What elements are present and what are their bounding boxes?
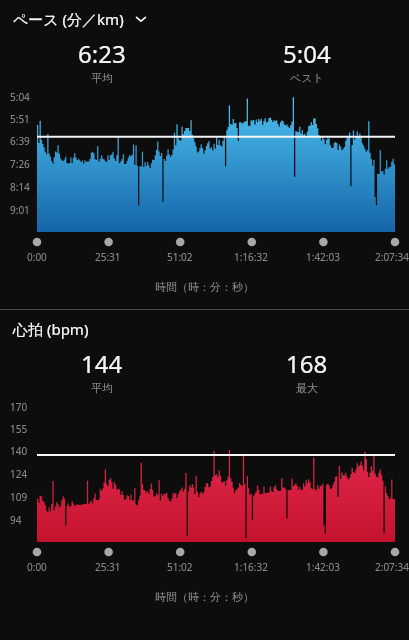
staticText: 8:14 [10,180,30,194]
staticText: 51:02 [167,250,193,264]
staticText: 7:26 [10,157,30,171]
staticText: 時間（時：分：秒） [0,590,409,604]
staticText: 6:39 [10,134,30,148]
staticText: 25:31 [95,250,121,264]
button[interactable]: ペース (分／km) [0,9,409,29]
staticText: 6:23 [78,37,126,70]
staticText: ペース (分／km) [13,9,124,29]
staticText: 170 [10,400,28,414]
staticText: 平均 [91,71,113,85]
staticText: 140 [10,444,28,458]
button[interactable]: 心拍 (bpm) [0,319,409,339]
staticText: 144 [81,347,123,380]
other: Change metric [133,11,149,27]
staticText: 1:42:03 [306,250,340,264]
staticText: 平均 [91,381,113,395]
staticText: 25:31 [95,560,121,574]
staticText: 2:07:34 [375,560,409,574]
staticText: 5:51 [10,112,30,126]
staticText: 1:16:32 [234,250,268,264]
staticText: 5:04 [10,90,30,104]
staticText: 時間（時：分：秒） [0,280,409,294]
staticText: 心拍 (bpm) [13,319,89,339]
staticText: 155 [10,422,28,436]
staticText: 最大 [296,381,318,395]
staticText: 1:16:32 [234,560,268,574]
staticText: 94 [10,513,22,527]
staticText: 124 [10,467,28,481]
staticText: 1:42:03 [306,560,340,574]
staticText: 168 [286,347,328,380]
staticText: 109 [10,490,28,504]
staticText: 5:04 [283,37,331,70]
staticText: 0:00 [27,250,47,264]
staticText: 51:02 [167,560,193,574]
staticText: 9:01 [10,203,30,217]
staticText: 0:00 [27,560,47,574]
staticText: ベスト [290,71,324,85]
staticText: 2:07:34 [375,250,409,264]
